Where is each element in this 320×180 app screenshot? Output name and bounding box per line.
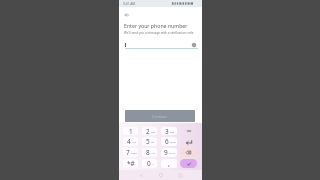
staticText: GHI <box>132 140 137 143</box>
staticText: 2 <box>146 127 150 135</box>
staticText: 9 <box>164 148 168 157</box>
staticText: *# <box>127 159 135 168</box>
button[interactable]: 2 <box>142 127 157 135</box>
button[interactable]: Dash <box>180 127 197 135</box>
button[interactable]: 6 <box>161 137 177 146</box>
staticText: TUV <box>151 151 156 154</box>
staticText: 4 <box>127 137 131 146</box>
staticText: ABC <box>151 130 156 133</box>
staticText: 3 <box>165 127 169 135</box>
staticText: 8 <box>146 148 150 157</box>
button[interactable]: , <box>161 159 177 168</box>
staticText: , <box>168 159 170 168</box>
staticText: 0 <box>147 159 151 168</box>
button[interactable]: 0 <box>142 159 157 168</box>
staticText: 9:41 AM <box>123 2 136 6</box>
button[interactable]: Enter <box>180 137 197 146</box>
button[interactable]: 8 <box>142 148 157 157</box>
staticText: WXYZ <box>169 151 176 154</box>
button[interactable]: Recents <box>176 171 184 179</box>
staticText: MNO <box>170 140 176 143</box>
button[interactable]: Backspace <box>180 148 197 157</box>
button[interactable]: 3 <box>161 127 177 135</box>
button[interactable]: Back <box>121 9 132 20</box>
button[interactable]: Clear <box>190 41 198 49</box>
button[interactable]: 5 <box>142 137 157 146</box>
staticText: 1 <box>129 127 133 135</box>
staticText: JKL <box>151 140 155 143</box>
staticText: We'll send you a message with a verifica… <box>124 31 194 35</box>
button[interactable]: Done <box>180 159 197 168</box>
staticText: Continue <box>152 114 168 119</box>
staticText: 6 <box>165 137 169 146</box>
staticText: + <box>152 162 154 165</box>
button[interactable]: Continue <box>125 110 195 122</box>
staticText: 5 <box>146 137 150 146</box>
staticText: DEF <box>170 130 175 133</box>
staticText: 7 <box>126 148 130 157</box>
button[interactable]: Back <box>137 171 145 179</box>
staticText: PQRS <box>131 151 138 154</box>
button[interactable]: *# <box>123 159 138 168</box>
button[interactable]: 4 <box>123 137 138 146</box>
button[interactable]: 7 <box>123 148 138 157</box>
button[interactable]: 9 <box>161 148 177 157</box>
staticText: Enter your phone number <box>124 22 188 29</box>
button[interactable]: 1 <box>123 127 138 135</box>
button[interactable]: Home <box>157 171 165 179</box>
